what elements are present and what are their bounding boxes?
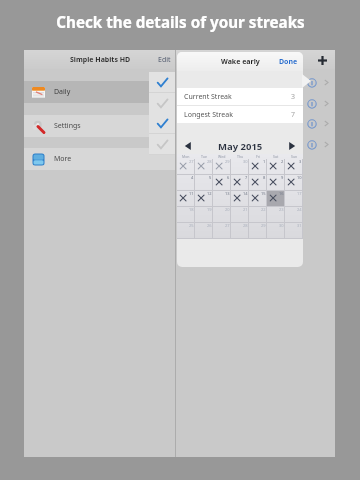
button[interactable]: Not done (149, 93, 175, 114)
button[interactable]: Add habit (314, 52, 330, 68)
button[interactable]: 7 (231, 175, 249, 191)
button[interactable]: Done (149, 72, 175, 93)
staticText: Sat (273, 154, 279, 159)
button[interactable]: 11 (177, 191, 195, 207)
button[interactable]: 27 (177, 159, 195, 175)
button[interactable]: 27 (213, 223, 231, 239)
button[interactable]: Info (176, 72, 335, 93)
staticText: Done (279, 57, 298, 67)
button[interactable]: Settings (24, 115, 176, 137)
button[interactable]: 4 (177, 175, 195, 191)
button[interactable]: 29 (213, 159, 231, 175)
staticText: Daily (54, 87, 71, 97)
button[interactable]: Edit (158, 55, 171, 65)
other: Info (307, 140, 317, 150)
staticText: 25 (189, 223, 194, 228)
button[interactable]: 20 (213, 207, 231, 223)
button[interactable]: 3 (285, 159, 303, 175)
button[interactable]: Current Streak (177, 88, 303, 105)
staticText: Settings (54, 121, 81, 131)
staticText: 17 (297, 191, 302, 196)
staticText: Current Streak (184, 92, 232, 102)
button[interactable]: 25 (177, 223, 195, 239)
button[interactable]: 31 (285, 223, 303, 239)
button[interactable]: 18 (177, 207, 195, 223)
button[interactable]: 2 (267, 159, 285, 175)
button[interactable]: Daily (24, 81, 176, 103)
button[interactable]: 28 (231, 223, 249, 239)
staticText: 13 (225, 191, 230, 196)
staticText: 10 (297, 175, 302, 180)
button[interactable]: Longest Streak (177, 106, 303, 123)
button[interactable]: 26 (195, 223, 213, 239)
staticText: 7 (245, 175, 248, 180)
staticText: 3 (299, 159, 302, 164)
staticText: 7 (291, 110, 296, 120)
staticText: 2 (281, 159, 284, 164)
staticText: 27 (189, 159, 194, 164)
staticText: Edit (158, 55, 171, 65)
staticText: Fri (256, 154, 261, 159)
staticText: Tue (201, 154, 207, 159)
button[interactable]: 21 (231, 207, 249, 223)
staticText: 23 (279, 207, 284, 212)
button[interactable]: 23 (267, 207, 285, 223)
button[interactable]: Info (176, 134, 335, 155)
staticText: 6 (227, 175, 230, 180)
button[interactable]: 10 (285, 175, 303, 191)
button[interactable]: 15 (249, 191, 267, 207)
button[interactable]: Info (176, 93, 335, 114)
button[interactable]: Info (176, 113, 335, 134)
button[interactable]: 8 (249, 175, 267, 191)
button[interactable]: Next month (286, 140, 298, 152)
staticText: 26 (207, 223, 212, 228)
staticText: 18 (189, 207, 194, 212)
staticText: 16 (279, 191, 284, 196)
staticText: 27 (225, 223, 230, 228)
staticText: 1 (263, 159, 266, 164)
button[interactable]: 17 (285, 191, 303, 207)
button[interactable]: 16 (267, 191, 285, 207)
button[interactable]: 30 (267, 223, 285, 239)
staticText: 22 (261, 207, 266, 212)
staticText: 11 (189, 191, 194, 196)
button[interactable]: 19 (195, 207, 213, 223)
button[interactable]: 13 (213, 191, 231, 207)
button[interactable]: 5 (195, 175, 213, 191)
button[interactable]: Previous month (182, 140, 194, 152)
staticText: Thu (237, 154, 244, 159)
staticText: Sun (291, 154, 298, 159)
staticText: Wed (218, 154, 226, 159)
staticText: 12 (207, 191, 212, 196)
button[interactable]: 24 (285, 207, 303, 223)
staticText: 4 (191, 175, 194, 180)
staticText: 28 (207, 159, 212, 164)
staticText: Simple Habits HD (70, 55, 131, 65)
other: Info (307, 99, 317, 109)
staticText: 21 (243, 207, 248, 212)
staticText: 5 (209, 175, 212, 180)
button[interactable]: 29 (249, 223, 267, 239)
button[interactable]: 22 (249, 207, 267, 223)
button[interactable]: More (24, 148, 176, 170)
button[interactable]: Done (279, 57, 298, 67)
staticText: Longest Streak (184, 110, 233, 120)
staticText: 19 (207, 207, 212, 212)
button[interactable]: 6 (213, 175, 231, 191)
staticText: 30 (279, 223, 284, 228)
staticText: 3 (291, 92, 296, 102)
other: Info (307, 78, 317, 88)
button[interactable]: Not done (149, 134, 175, 155)
button[interactable]: 12 (195, 191, 213, 207)
staticText: 15 (261, 191, 266, 196)
button[interactable]: 9 (267, 175, 285, 191)
button[interactable]: 28 (195, 159, 213, 175)
button[interactable]: 14 (231, 191, 249, 207)
staticText: May 2015 (218, 140, 263, 153)
staticText: 31 (297, 223, 302, 228)
staticText: 24 (297, 207, 302, 212)
staticText: 29 (225, 159, 230, 164)
button[interactable]: 30 (231, 159, 249, 175)
button[interactable]: Done (149, 113, 175, 134)
button[interactable]: 1 (249, 159, 267, 175)
